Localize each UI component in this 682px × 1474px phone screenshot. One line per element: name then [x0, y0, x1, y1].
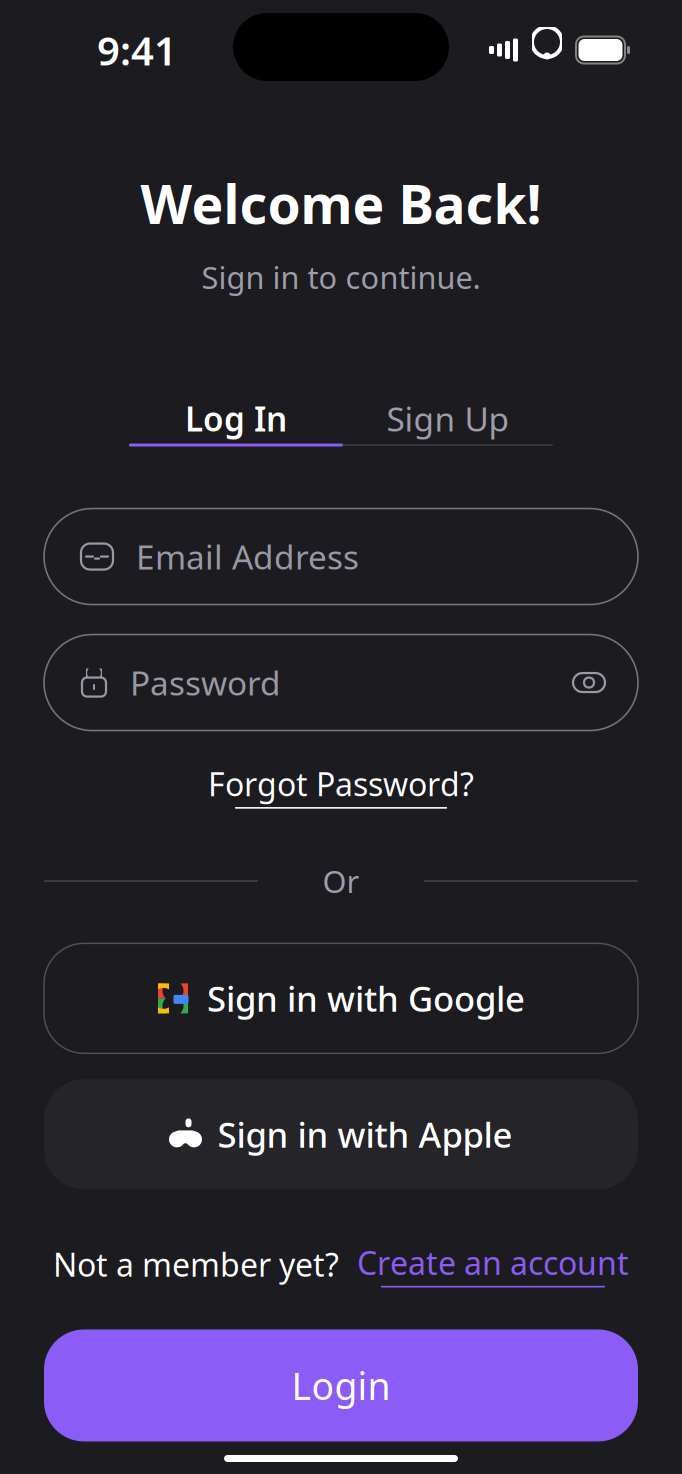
staticText: Sign in with Apple — [217, 1111, 512, 1157]
button[interactable]: Sign in with Apple — [44, 1079, 638, 1189]
staticText: Log In — [185, 396, 287, 441]
button[interactable]: Email Address — [44, 508, 638, 604]
staticText: Login — [291, 1361, 390, 1410]
button[interactable]: Forgot Password? — [200, 754, 482, 817]
staticText: Forgot Password? — [208, 762, 474, 805]
staticText: Password — [130, 660, 281, 705]
button[interactable]: Password — [44, 634, 638, 730]
staticText: Email Address — [136, 534, 359, 579]
staticText: Sign in with Google — [207, 975, 525, 1021]
staticText: Sign in to continue. — [201, 257, 480, 297]
staticText: Sign Up — [386, 396, 509, 441]
button[interactable]: Login — [44, 1329, 638, 1441]
staticText: 9:41 — [97, 23, 177, 76]
button[interactable]: Sign in with Google — [44, 943, 638, 1053]
button[interactable]: Create an account — [357, 1241, 629, 1287]
staticText: Or — [322, 861, 359, 901]
staticText: Create an account — [357, 1241, 629, 1284]
staticText: Not a member yet? — [53, 1243, 339, 1286]
button[interactable]: Sign Up — [343, 393, 553, 443]
button[interactable]: Log In — [129, 393, 343, 443]
staticText: Welcome Back! — [140, 168, 541, 239]
